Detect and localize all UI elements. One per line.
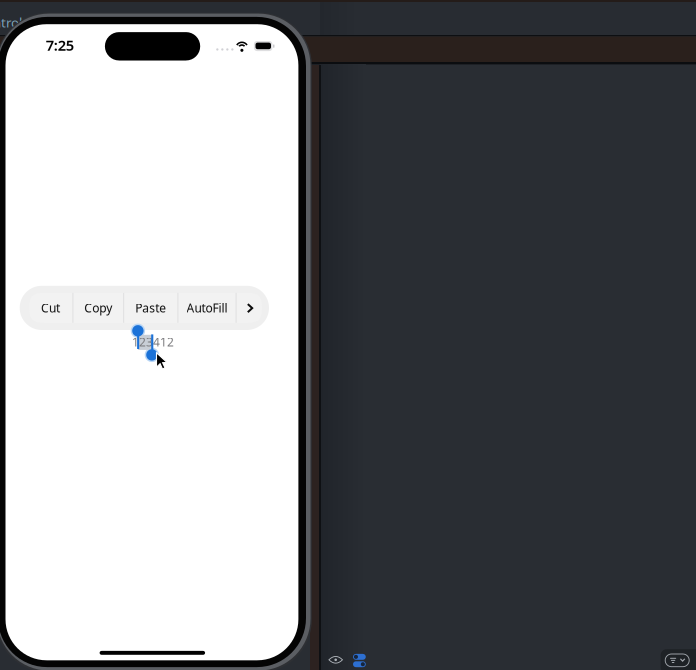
button[interactable]: Live preview off (353, 654, 366, 660)
button[interactable]: Paste (124, 293, 177, 323)
button[interactable]: More actions (237, 293, 262, 323)
staticText: Paste (135, 300, 166, 316)
button[interactable]: Preview visibility (328, 655, 343, 664)
button[interactable]: Copy (73, 293, 123, 323)
staticText: Cut (41, 300, 60, 316)
staticText: 123412 (132, 334, 174, 350)
staticText: Copy (84, 300, 112, 316)
button[interactable]: Live preview on (353, 661, 366, 667)
staticText: AutoFill (186, 300, 227, 316)
button[interactable]: Filter (661, 649, 696, 670)
button[interactable]: Cut (29, 293, 72, 323)
staticText: 7:25 (46, 35, 74, 55)
button[interactable]: AutoFill (178, 293, 236, 323)
staticText: ntrol (0, 13, 22, 31)
